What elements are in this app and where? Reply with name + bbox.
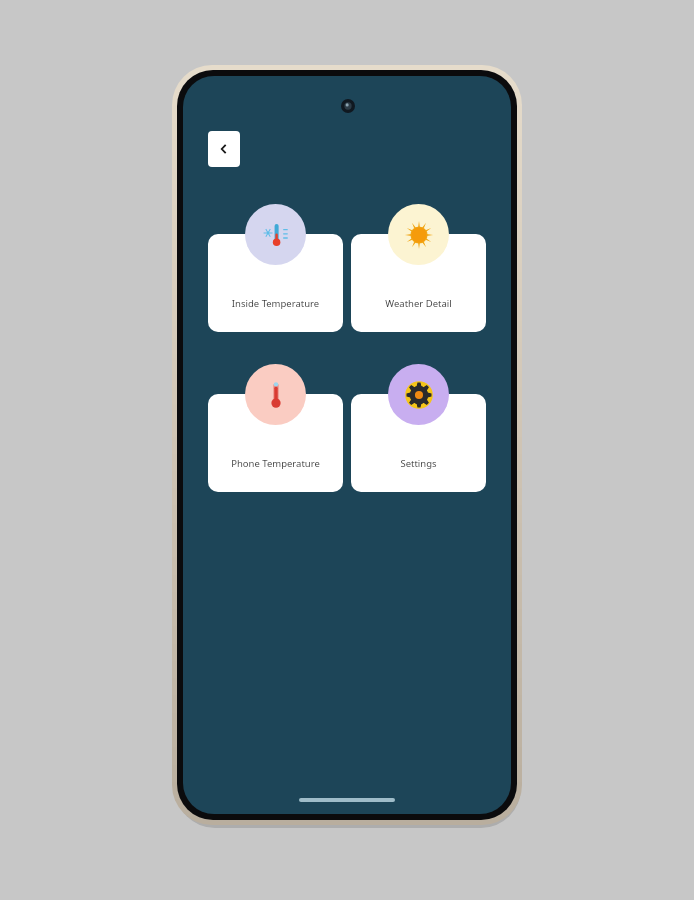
button[interactable]: Phone Temperature	[208, 364, 343, 492]
button[interactable]: Back	[208, 131, 240, 167]
staticText: Weather Detail	[351, 297, 486, 310]
button[interactable]: Inside Temperature	[208, 204, 343, 332]
button[interactable]: Settings	[351, 364, 486, 492]
staticText: Settings	[351, 457, 486, 470]
button[interactable]: Weather Detail	[351, 204, 486, 332]
staticText: Phone Temperature	[208, 457, 343, 470]
staticText: Inside Temperature	[208, 297, 343, 310]
